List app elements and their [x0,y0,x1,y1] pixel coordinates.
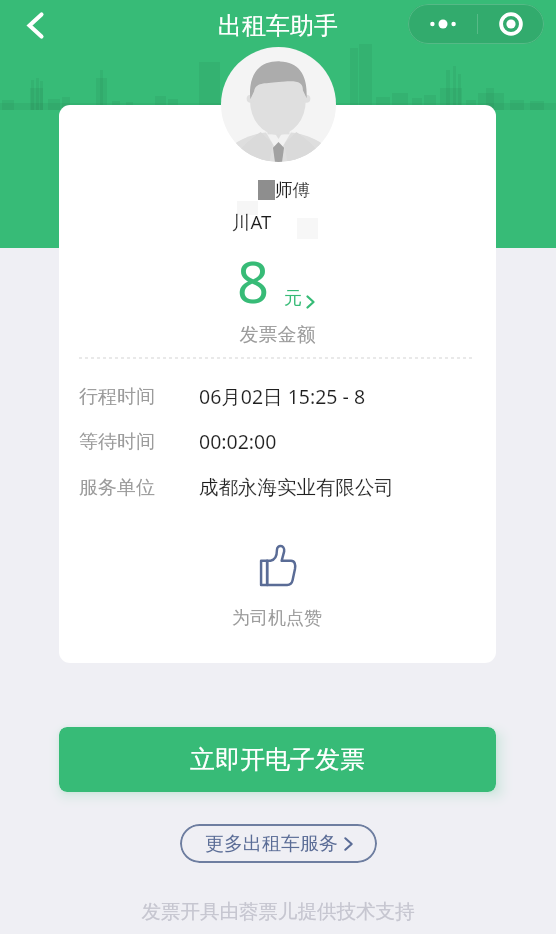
staticText: 行程时间 [79,385,199,409]
button[interactable]: 更多出租车服务 [180,824,377,863]
staticText: 等待时间 [79,430,199,454]
staticText: 师傅 [275,179,310,201]
staticText: 立即开电子发票 [190,744,365,775]
button[interactable]: 立即开电子发票 [59,727,496,792]
staticText: 川AT [232,209,272,234]
button[interactable]: More [408,4,477,44]
staticText: 发票开具由蓉票儿提供技术支持 [0,899,556,924]
staticText: 元 [284,287,302,310]
button[interactable]: 为司机点赞 [227,541,327,630]
button[interactable]: Close mini program [478,4,544,44]
staticText: 服务单位 [79,476,199,500]
staticText: 出租车助手 [218,11,338,41]
staticText: 8 [237,243,270,319]
staticText: 发票金额 [59,323,496,347]
staticText: 06月02日 15:25 - 8 [199,383,366,410]
staticText: 为司机点赞 [232,607,322,630]
button[interactable]: Back [8,0,62,50]
staticText: 更多出租车服务 [205,832,338,856]
staticText: 00:02:00 [199,428,277,455]
staticText: 成都永海实业有限公司 [199,475,394,500]
